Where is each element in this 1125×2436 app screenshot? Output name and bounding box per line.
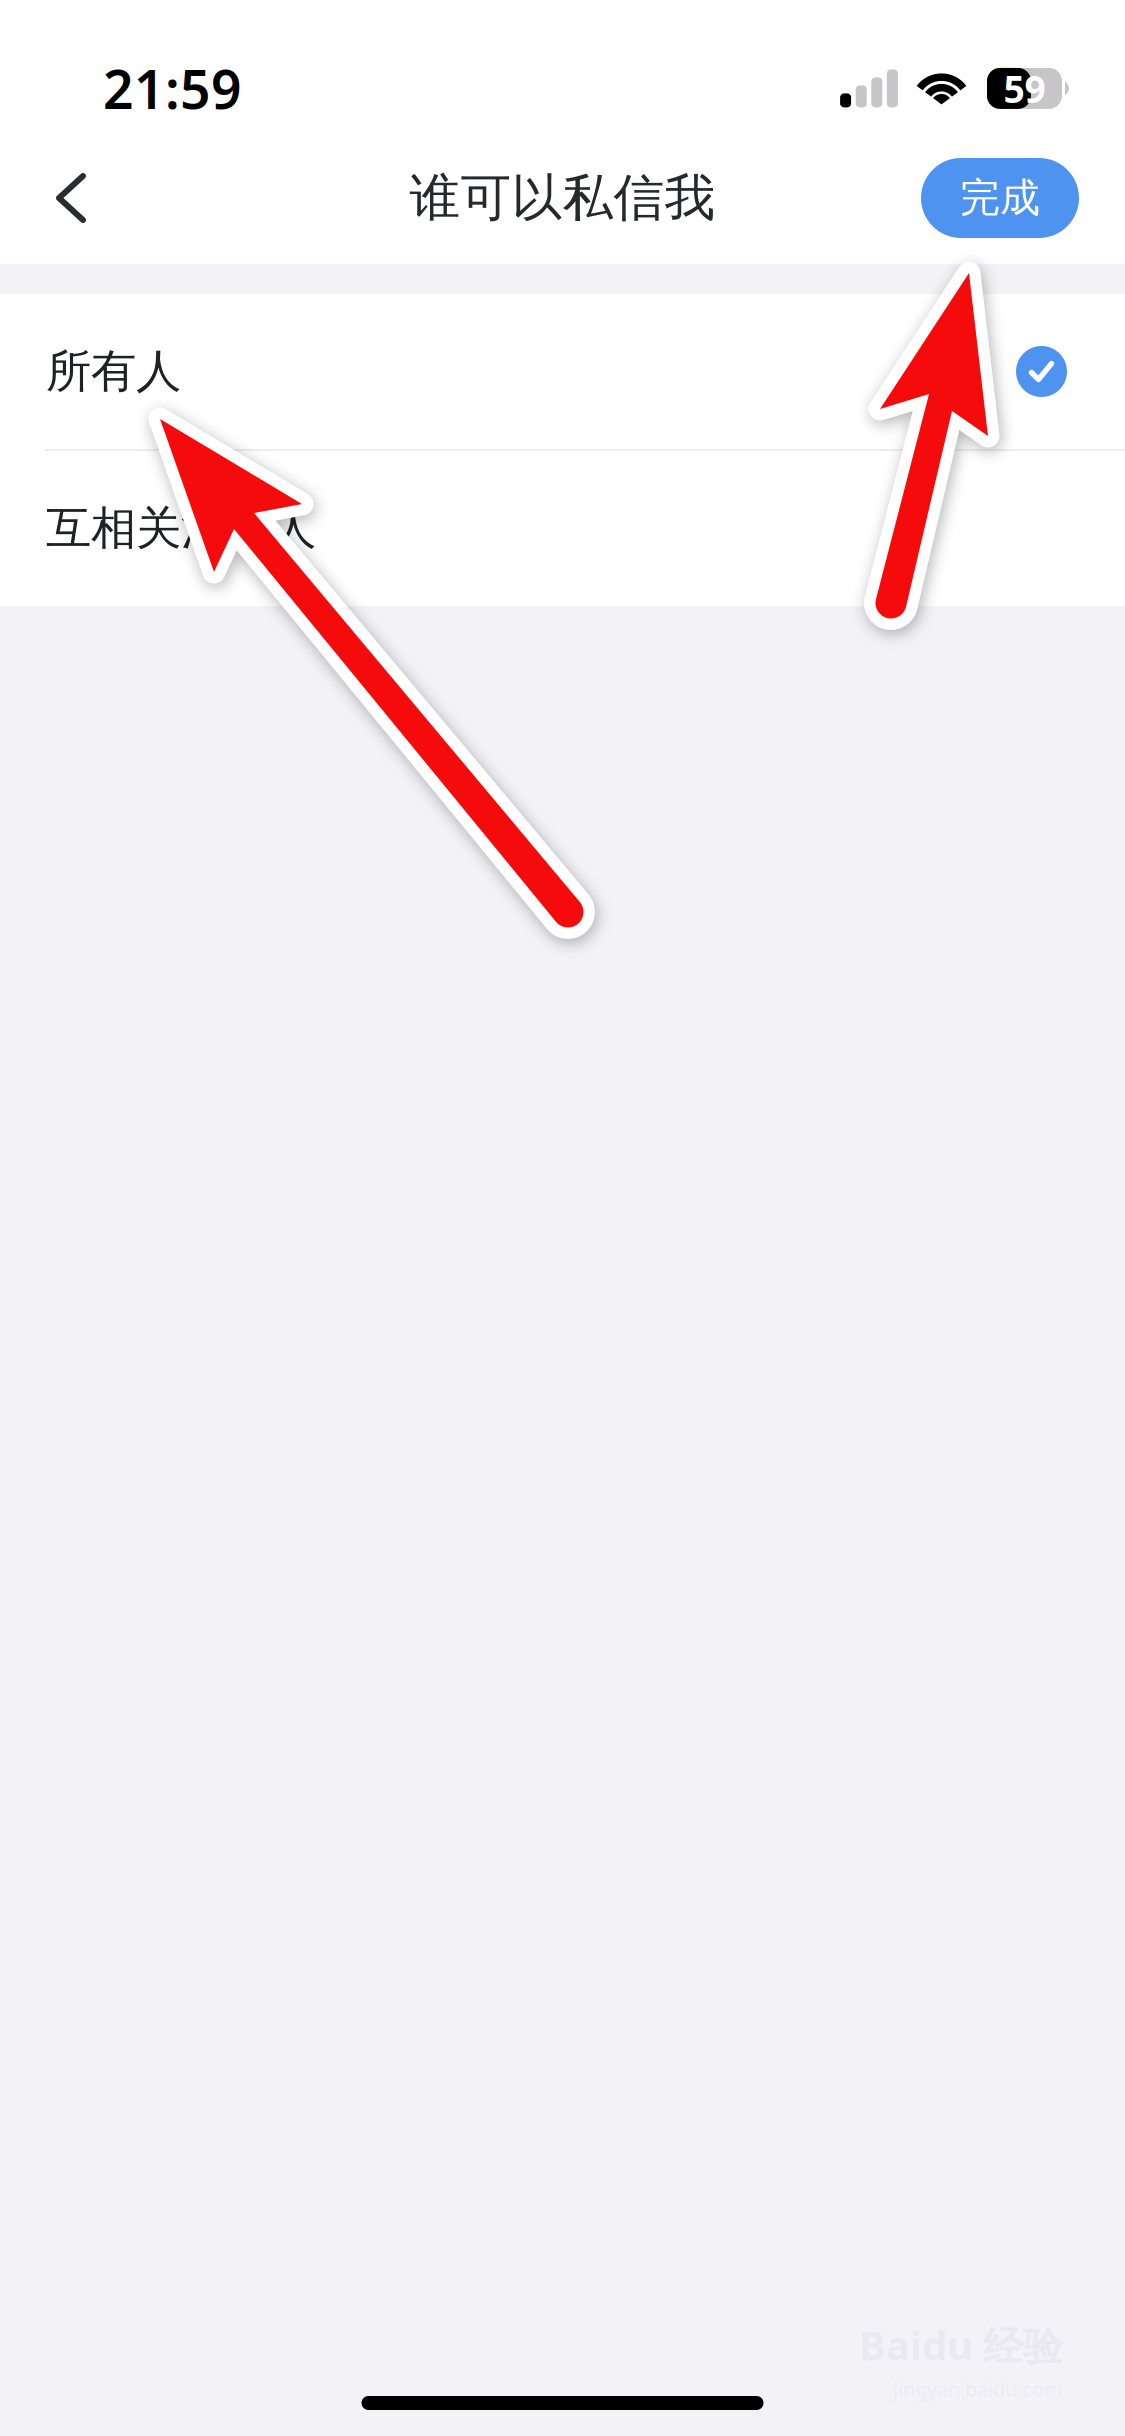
button[interactable]: Back xyxy=(16,143,126,253)
staticText: 21:59 xyxy=(103,53,242,124)
button[interactable]: 所有人 xyxy=(0,294,1125,449)
staticText: 59 xyxy=(1003,64,1045,113)
staticText: 互相关注的人 xyxy=(46,501,316,556)
button[interactable]: 互相关注的人 xyxy=(0,451,1125,606)
button[interactable]: 完成 xyxy=(921,158,1079,238)
staticText: 完成 xyxy=(960,173,1040,222)
staticText: 所有人 xyxy=(46,344,181,399)
staticText: Baidu 经验 xyxy=(859,2318,1063,2371)
staticText: 谁可以私信我 xyxy=(409,167,715,229)
